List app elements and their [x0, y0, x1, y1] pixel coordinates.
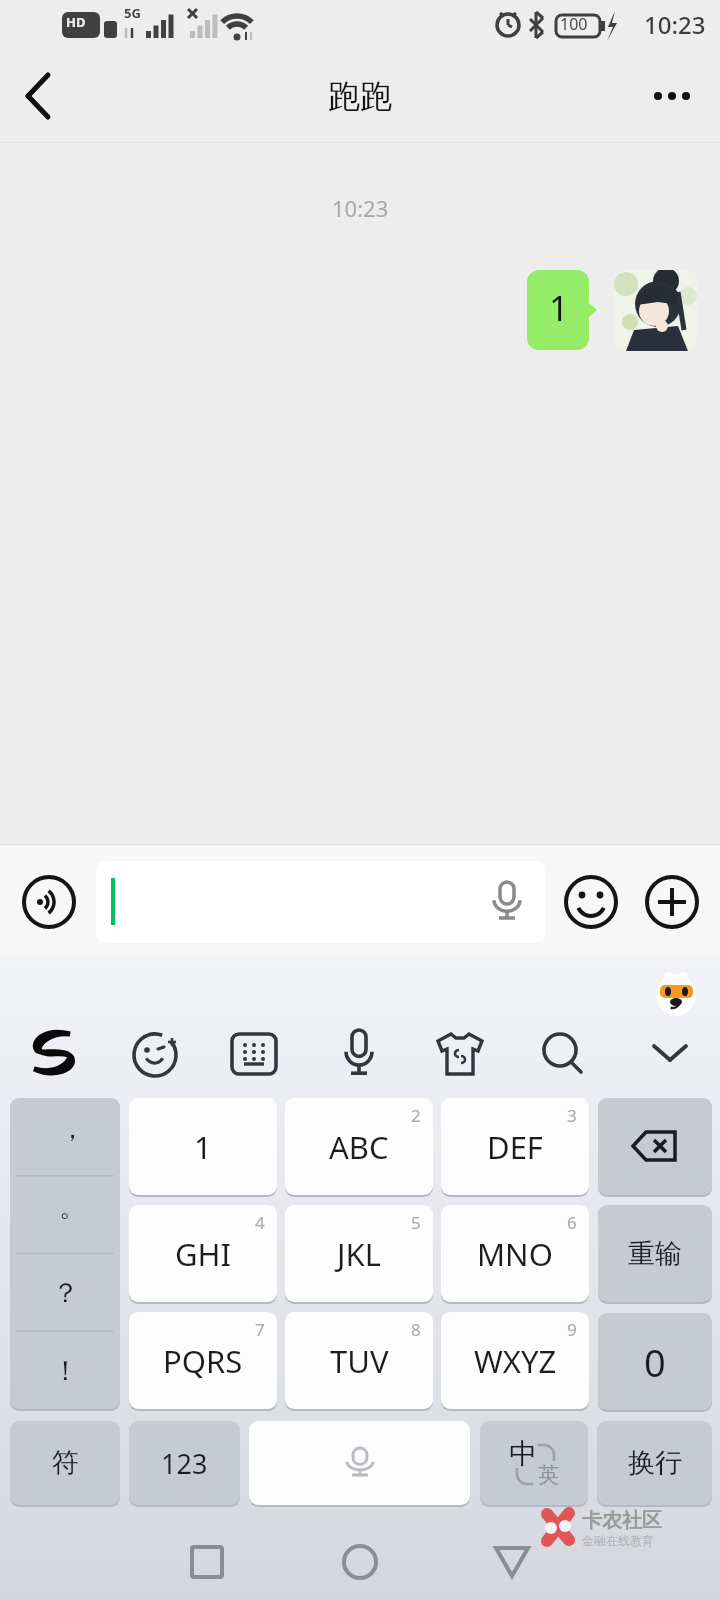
button[interactable]: JKL [285, 1205, 433, 1302]
staticText: HD [66, 13, 86, 31]
staticText: 7 [255, 1318, 265, 1341]
button[interactable]: 符 [10, 1421, 120, 1505]
button[interactable]: WXYZ [441, 1312, 589, 1409]
button[interactable] [598, 1098, 712, 1195]
button[interactable] [232, 1034, 276, 1074]
staticText: PQRS [163, 1340, 243, 1382]
button[interactable] [614, 270, 697, 351]
button[interactable]: 重输 [598, 1205, 712, 1302]
staticText: 8 [411, 1318, 421, 1341]
button[interactable] [22, 875, 76, 929]
button[interactable]: DEF [441, 1098, 589, 1195]
staticText: 中 [509, 1436, 537, 1471]
staticText: GHI [175, 1233, 232, 1275]
staticText: WXYZ [474, 1340, 557, 1382]
staticText: 3 [567, 1104, 577, 1127]
button[interactable]: 换行 [597, 1421, 712, 1505]
staticText: 9 [567, 1318, 577, 1341]
staticText: 重输 [628, 1237, 682, 1271]
button[interactable] [645, 875, 700, 930]
button[interactable] [540, 1032, 586, 1078]
staticText: 金融在线教育 [582, 1533, 654, 1548]
button[interactable] [96, 861, 545, 943]
staticText: 10:23 [332, 193, 389, 223]
button[interactable]: MNO [441, 1205, 589, 1302]
staticText: 123 [161, 1445, 208, 1482]
button[interactable]: 1 [129, 1098, 277, 1195]
button[interactable] [30, 1032, 76, 1072]
button[interactable]: 123 [129, 1421, 240, 1505]
button[interactable]: GHI [129, 1205, 277, 1302]
staticText: ABC [329, 1126, 389, 1168]
staticText: 6 [567, 1211, 577, 1234]
staticText: MNO [477, 1233, 553, 1275]
button[interactable]: ABC [285, 1098, 433, 1195]
staticText: ？ [52, 1276, 79, 1310]
button[interactable]: TUV [285, 1312, 433, 1409]
staticText: 1 [194, 1126, 212, 1168]
staticText: 4 [255, 1211, 265, 1234]
button[interactable] [0, 61, 70, 131]
staticText: ！ [52, 1354, 79, 1388]
staticText: 100 [560, 13, 588, 35]
staticText: 卡农社区 [582, 1508, 662, 1533]
staticText: 换行 [628, 1446, 682, 1480]
button[interactable] [132, 1032, 178, 1078]
staticText: 符 [52, 1446, 79, 1480]
staticText: 5 [411, 1211, 421, 1234]
button[interactable]: 1 [527, 270, 596, 350]
button[interactable] [640, 61, 720, 131]
staticText: 2 [411, 1104, 421, 1127]
staticText: 跑跑 [328, 76, 392, 116]
staticText: 10:23 [644, 8, 706, 41]
button[interactable] [179, 1534, 235, 1590]
button[interactable] [564, 875, 619, 930]
button[interactable]: PQRS [129, 1312, 277, 1409]
staticText: 0 [644, 1336, 666, 1388]
staticText: DEF [487, 1126, 543, 1168]
button[interactable]: ， [10, 1098, 120, 1409]
button[interactable] [484, 1534, 540, 1590]
button[interactable] [342, 1030, 376, 1078]
button[interactable] [332, 1534, 388, 1590]
staticText: 英 [538, 1462, 559, 1488]
button[interactable] [438, 1034, 482, 1074]
staticText: 5G [124, 4, 141, 22]
button[interactable]: 0 [598, 1313, 712, 1410]
staticText: JKL [337, 1233, 381, 1275]
staticText: ， [59, 1112, 86, 1146]
button[interactable]: 中 [480, 1421, 588, 1505]
staticText: TUV [330, 1340, 389, 1382]
button[interactable] [650, 1042, 690, 1066]
staticText: 1 [549, 285, 569, 331]
staticText: 。 [59, 1190, 86, 1224]
button[interactable] [249, 1421, 470, 1505]
